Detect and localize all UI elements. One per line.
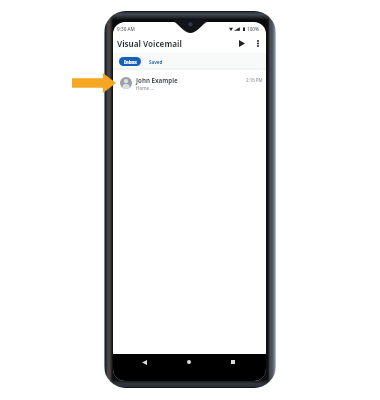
- staticText: 100%: [247, 26, 260, 32]
- staticText: John Example: [136, 76, 178, 84]
- staticText: Inbox: [124, 59, 137, 65]
- button[interactable]: Home: [182, 355, 196, 369]
- staticText: 2:16 PM: [246, 77, 263, 83]
- staticText: Visual Voicemail: [117, 38, 182, 49]
- button[interactable]: Play voicemail: [235, 36, 249, 50]
- button[interactable]: Back: [137, 355, 151, 369]
- staticText: Home ...: [136, 85, 154, 91]
- staticText: Saved: [149, 59, 163, 65]
- staticText: 9:30 AM: [117, 26, 135, 32]
- button[interactable]: More options: [251, 36, 265, 50]
- button[interactable]: John Example: [113, 70, 266, 93]
- button[interactable]: Saved: [147, 57, 165, 66]
- button[interactable]: Inbox: [119, 57, 141, 66]
- button[interactable]: Recent apps: [226, 355, 240, 369]
